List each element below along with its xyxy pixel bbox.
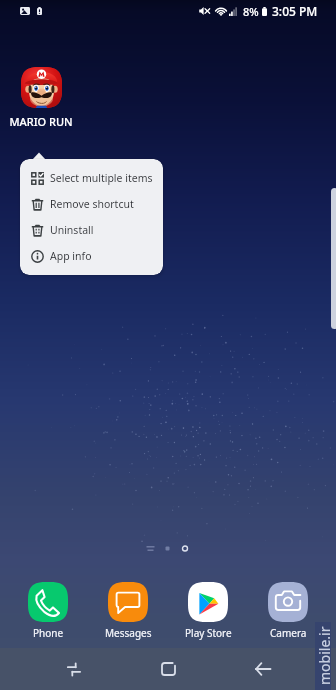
button[interactable]: MARIO RUN xyxy=(0,67,82,129)
button[interactable]: Phone xyxy=(8,582,88,640)
staticText: mobile.ir xyxy=(315,626,331,685)
staticText: App info xyxy=(50,249,92,263)
button[interactable]: Home xyxy=(146,648,190,690)
staticText: Camera xyxy=(270,626,307,640)
staticText: Messages xyxy=(105,626,152,640)
button[interactable]: Uninstall xyxy=(20,217,163,243)
staticText: Select multiple items xyxy=(50,171,153,185)
staticText: Play Store xyxy=(185,626,232,640)
button[interactable]: Select multiple items xyxy=(20,165,163,191)
button[interactable]: Remove shortcut xyxy=(20,191,163,217)
button[interactable]: Messages xyxy=(88,582,168,640)
staticText: Phone xyxy=(33,626,64,640)
staticText: Uninstall xyxy=(50,223,94,237)
staticText: MARIO RUN xyxy=(9,114,73,129)
staticText: Remove shortcut xyxy=(50,197,134,211)
button[interactable]: Back xyxy=(241,648,285,690)
staticText: 8% xyxy=(243,4,259,19)
button[interactable]: App info xyxy=(20,243,163,269)
staticText: 3:05 PM xyxy=(272,3,318,19)
button[interactable]: Camera xyxy=(248,582,328,640)
button[interactable]: Recent apps xyxy=(52,648,96,690)
button[interactable]: Play Store xyxy=(168,582,248,640)
